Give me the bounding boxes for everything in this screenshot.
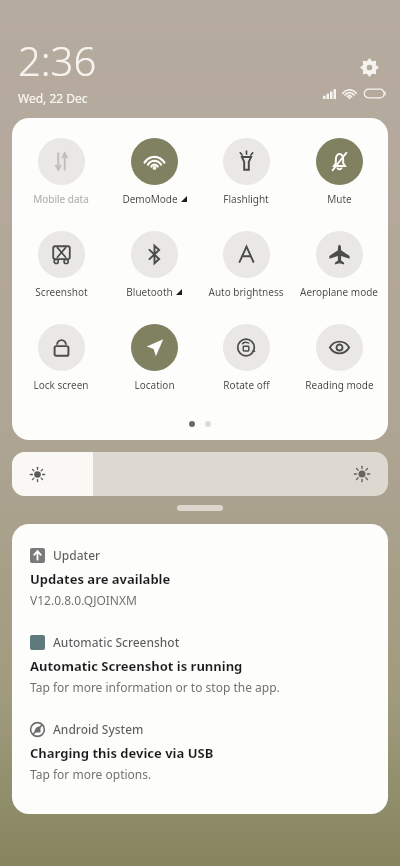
button[interactable]: Android System	[30, 721, 372, 782]
button[interactable]: Rotate off	[202, 322, 290, 394]
staticText: Automatic Screenshot is running	[30, 657, 243, 675]
button[interactable]: Mute	[295, 136, 383, 208]
button[interactable]: Updater	[30, 547, 372, 608]
button[interactable]: Bluetooth	[110, 229, 198, 301]
staticText: DemoMode	[122, 192, 178, 206]
staticText: Wed, 22 Dec	[18, 90, 88, 106]
staticText: Tap for more information or to stop the …	[30, 679, 280, 695]
staticText: Auto brightness	[208, 285, 284, 299]
button[interactable]: Screenshot	[17, 229, 105, 301]
staticText: Tap for more options.	[30, 766, 152, 782]
staticText: Mobile data	[33, 192, 89, 206]
staticText: Charging this device via USB	[30, 744, 214, 762]
button[interactable]: Auto brightness	[202, 229, 290, 301]
staticText: Rotate off	[223, 378, 270, 392]
button[interactable]: Lock screen	[17, 322, 105, 394]
staticText: Mute	[327, 192, 352, 206]
button[interactable]: Automatic Screenshot	[30, 634, 372, 695]
staticText: Updates are available	[30, 570, 171, 588]
staticText: Location	[134, 378, 175, 392]
button[interactable]: Flashlight	[202, 136, 290, 208]
staticText: Aeroplane mode	[300, 285, 378, 299]
staticText: Bluetooth	[126, 285, 173, 299]
button[interactable]: Location	[110, 322, 198, 394]
button[interactable]: Settings	[352, 50, 386, 84]
staticText: Android System	[53, 721, 144, 737]
button[interactable]: Aeroplane mode	[295, 229, 383, 301]
staticText: Automatic Screenshot	[53, 634, 180, 650]
staticText: Screenshot	[35, 285, 88, 299]
button[interactable]: Reading mode	[295, 322, 383, 394]
staticText: Flashlight	[223, 192, 269, 206]
staticText: Reading mode	[305, 378, 374, 392]
button[interactable]: Mobile data	[17, 136, 105, 208]
staticText: 2:36	[18, 33, 97, 87]
staticText: Lock screen	[33, 378, 89, 392]
button[interactable]: DemoMode	[110, 136, 198, 208]
staticText: Updater	[53, 547, 101, 563]
staticText: V12.0.8.0.QJOINXM	[30, 592, 137, 608]
button[interactable]	[12, 452, 388, 496]
